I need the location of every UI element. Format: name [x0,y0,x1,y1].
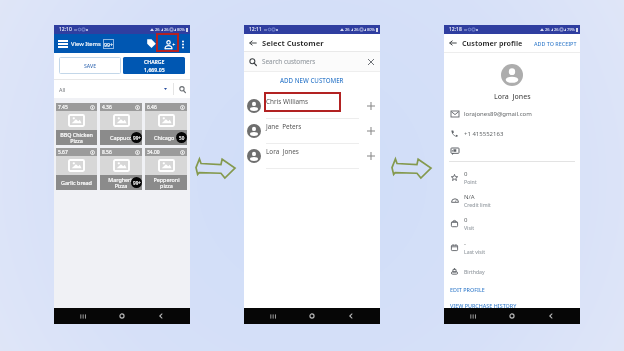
staticText: 7.45 [58,104,68,111]
staticText: Search customers [262,57,316,66]
staticText: 80% [367,27,375,32]
button[interactable]: Add customer to receipt [364,99,378,113]
staticText: 0 [464,216,468,224]
staticText: EDIT PROFILE [450,286,485,293]
button[interactable]: 4.36 [100,103,142,145]
staticText: 8.56 [102,149,112,156]
button[interactable]: Recents [463,308,483,324]
button[interactable]: VIEW PURCHASE HISTORY [444,301,580,310]
button[interactable]: 99+ [103,39,114,49]
staticText: lorajones89@gmail.com [464,110,532,118]
staticText: 80% [177,27,185,32]
button[interactable]: 8.56 [100,148,142,190]
button[interactable]: Back [247,37,259,49]
button[interactable]: More options [178,39,188,49]
button[interactable]: ADD TO RECEIPT [531,37,580,50]
staticText: +1 415552163 [464,130,504,138]
staticText: View Items [71,40,101,48]
button[interactable]: 34.00 [145,148,187,190]
staticText: SAVE [84,62,97,69]
button[interactable]: 7.45 [56,103,97,145]
staticText: 99+ [133,180,141,186]
button[interactable]: Jane Peters [244,119,380,144]
button[interactable]: Back [447,37,459,49]
staticText: - [464,240,466,248]
staticText: N/A [464,193,475,201]
button[interactable]: 5.67 [56,148,97,190]
button[interactable]: lorajones89@gmail.com [444,106,580,121]
staticText: Lora Jones [494,92,531,102]
staticText: Last visit [464,248,486,255]
button[interactable]: +1 415552163 [444,126,580,141]
staticText: 34.00 [147,149,160,156]
staticText: Pepperoni pizza [153,176,180,190]
button[interactable] [444,144,580,159]
staticText: Birthday [464,268,485,275]
button[interactable]: 0 [444,216,580,231]
staticText: 4.36 [102,104,112,111]
button[interactable]: Discount [145,37,158,50]
staticText: Visit [464,224,475,231]
staticText: BBQ Chicken Pizza [60,131,93,145]
button[interactable]: Back [151,308,171,324]
staticText: Chris Williams [266,97,309,106]
staticText: Select Customer [262,38,324,48]
staticText: 26 [345,27,350,32]
staticText: 26 [155,27,160,32]
button[interactable]: 0 [444,170,580,185]
button[interactable]: EDIT PROFILE [444,285,580,294]
button[interactable]: Home [302,308,322,324]
staticText: Credit limit [464,201,491,208]
staticText: 26 [545,27,550,32]
staticText: Jane Peters [266,122,302,131]
staticText: Garlic bread [61,179,92,186]
button[interactable]: Birthday [444,264,580,279]
button[interactable]: Clear search [366,57,376,67]
staticText: 1,669.05 [144,66,165,73]
button[interactable]: Recents [263,308,283,324]
staticText: ADD TO RECEIPT [534,40,577,47]
button[interactable]: ADD NEW CUSTOMER [244,72,380,94]
staticText: 26 [164,27,169,32]
button[interactable]: CHARGE [123,57,185,74]
staticText: 12:10 [59,26,72,33]
button[interactable]: Lora Jones [244,144,380,169]
button[interactable]: Add customer to receipt [364,149,378,163]
staticText: 50 [179,135,185,141]
staticText: 79% [567,27,575,32]
staticText: 0 [464,170,468,178]
staticText: 12:18 [449,26,462,33]
staticText: 26 [354,27,359,32]
button[interactable]: SAVE [59,57,121,74]
staticText: 6.46 [147,104,157,111]
staticText: Lora Jones [266,147,299,156]
staticText: All [59,86,66,93]
button[interactable]: Chris Williams [244,94,380,119]
staticText: Margherit Pizza [108,176,134,190]
staticText: ADD NEW CUSTOMER [280,76,344,84]
staticText: 5.67 [58,149,68,156]
button[interactable]: Home [112,308,132,324]
button[interactable]: 6.46 [145,103,187,145]
staticText: 26 [554,27,559,32]
button[interactable]: Menu [56,37,69,50]
button[interactable]: Back [541,308,561,324]
staticText: Cappucci [110,134,133,141]
button[interactable]: All [54,80,173,98]
button[interactable]: Search [174,81,190,97]
button[interactable]: Home [502,308,522,324]
staticText: Point [464,178,477,185]
button[interactable]: Add customer [162,37,176,51]
staticText: VIEW PURCHASE HISTORY [450,302,517,309]
staticText: 99+ [133,135,141,141]
staticText: 99+ [104,41,113,48]
button[interactable]: Recents [73,308,93,324]
button[interactable]: N/A [444,193,580,208]
button[interactable]: Add customer to receipt [364,124,378,138]
staticText: Chicago P [154,134,179,141]
button[interactable]: Back [341,308,361,324]
button[interactable]: - [444,240,580,255]
staticText: Customer profile [462,38,523,48]
staticText: 12:11 [249,26,262,33]
staticText: CHARGE [144,58,165,65]
